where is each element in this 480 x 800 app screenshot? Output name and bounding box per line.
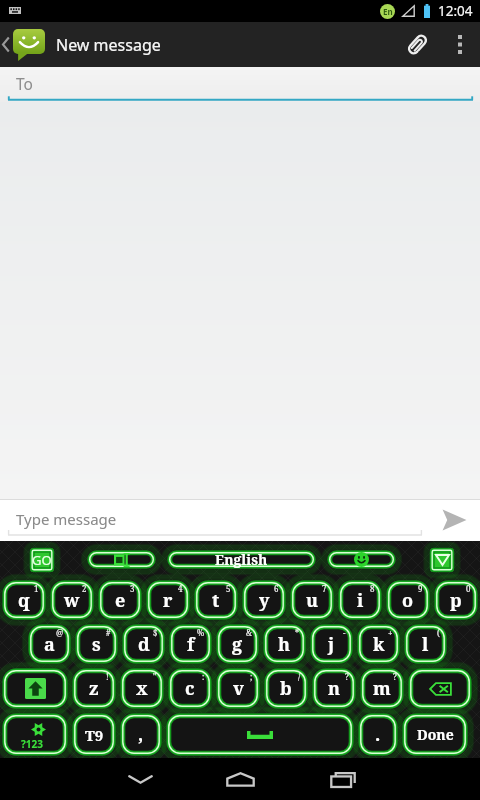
button[interactable]: Recent apps (315, 758, 371, 800)
button[interactable]: j (308, 622, 355, 666)
staticText: 4 (178, 583, 183, 594)
button[interactable]: Keyboard theme (85, 548, 158, 571)
button[interactable]: c (166, 666, 214, 711)
staticText: * (295, 627, 299, 638)
button[interactable]: Navigate up (0, 22, 47, 67)
staticText: - (343, 627, 346, 638)
staticText: h (278, 632, 291, 657)
staticText: o (402, 588, 414, 613)
staticText: j (328, 632, 335, 657)
staticText: $ (153, 627, 158, 638)
staticText: q (18, 588, 30, 613)
staticText: Type message (16, 509, 117, 529)
button[interactable]: b (262, 666, 310, 711)
button[interactable]: v (214, 666, 262, 711)
button[interactable]: Hide keyboard (428, 546, 456, 574)
button[interactable]: g (214, 622, 261, 666)
staticText: b (280, 676, 292, 701)
button[interactable]: a (26, 622, 73, 666)
staticText: GO (32, 551, 52, 569)
staticText: 9 (418, 583, 423, 594)
staticText: ?123 (21, 737, 43, 751)
staticText: % (197, 627, 205, 638)
staticText: i (357, 588, 364, 613)
staticText: e (115, 588, 126, 613)
button[interactable]: Shift (0, 666, 70, 711)
staticText: New message (56, 34, 161, 56)
button[interactable]: To (0, 67, 480, 102)
button[interactable]: p (432, 578, 480, 622)
button[interactable]: Home (212, 758, 268, 800)
button[interactable]: . (356, 711, 400, 758)
button[interactable]: Hide keyboard (112, 758, 168, 800)
staticText: r (163, 588, 173, 613)
button[interactable]: Done (400, 711, 470, 758)
staticText: + (388, 627, 393, 638)
button[interactable]: Symbols (0, 711, 70, 758)
staticText: To (16, 73, 33, 94)
staticText: p (450, 588, 462, 613)
button[interactable]: w (48, 578, 96, 622)
staticText: c (185, 676, 195, 701)
staticText: a (44, 632, 55, 657)
staticText: z (89, 676, 99, 701)
button[interactable]: k (355, 622, 402, 666)
staticText: 5 (226, 583, 231, 594)
button[interactable]: m (358, 666, 406, 711)
staticText: English (215, 550, 268, 569)
staticText: 8 (370, 583, 375, 594)
button[interactable]: q (0, 578, 48, 622)
button[interactable]: z (70, 666, 118, 711)
staticText: g (232, 632, 243, 657)
button[interactable]: h (261, 622, 308, 666)
staticText: ; (250, 671, 253, 682)
staticText: / (298, 671, 301, 682)
staticText: ! (106, 671, 109, 682)
staticText: t (212, 588, 220, 613)
staticText: , (138, 722, 144, 747)
staticText: T9 (85, 725, 104, 745)
button[interactable]: f (167, 622, 214, 666)
button[interactable]: x (118, 666, 166, 711)
button[interactable]: o (384, 578, 432, 622)
button[interactable]: , (118, 711, 164, 758)
staticText: Done (417, 725, 454, 744)
button[interactable]: Attach (394, 22, 440, 67)
staticText: s (92, 632, 101, 657)
button[interactable]: u (288, 578, 336, 622)
staticText: 6 (274, 583, 279, 594)
button[interactable]: English (165, 548, 318, 571)
button[interactable]: GO (28, 546, 56, 574)
staticText: ( (437, 627, 440, 638)
staticText: d (138, 632, 150, 657)
button[interactable]: t (192, 578, 240, 622)
staticText: 12:04 (438, 2, 473, 20)
staticText: n (328, 676, 341, 701)
button[interactable]: Space (164, 711, 356, 758)
staticText: w (64, 588, 80, 613)
button[interactable]: More options (440, 22, 480, 67)
button[interactable]: r (144, 578, 192, 622)
button[interactable]: i (336, 578, 384, 622)
button[interactable]: l (402, 622, 449, 666)
staticText: 1 (34, 583, 39, 594)
staticText: ? (345, 671, 349, 682)
staticText: @ (56, 627, 64, 638)
button[interactable]: Emoji (325, 548, 398, 571)
button[interactable]: Send (428, 499, 480, 541)
staticText: f (187, 632, 195, 657)
staticText: 2 (82, 583, 87, 594)
button[interactable]: T9 (70, 711, 118, 758)
button[interactable]: e (96, 578, 144, 622)
button[interactable]: y (240, 578, 288, 622)
staticText: v (233, 676, 244, 701)
staticText: 7 (322, 583, 327, 594)
button[interactable]: s (73, 622, 120, 666)
button[interactable]: n (310, 666, 358, 711)
button[interactable]: d (120, 622, 167, 666)
staticText: . (375, 722, 381, 747)
staticText: # (106, 627, 111, 638)
staticText: x (136, 676, 148, 701)
staticText: 0 (466, 583, 471, 594)
button[interactable]: Backspace (406, 666, 474, 711)
